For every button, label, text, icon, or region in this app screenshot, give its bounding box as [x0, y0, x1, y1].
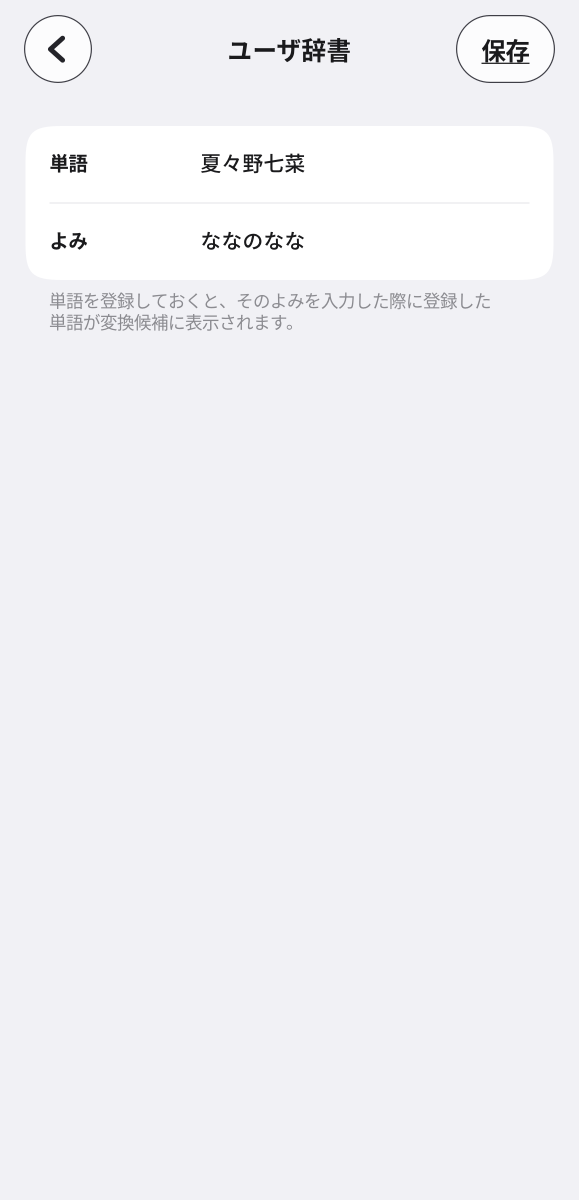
staticText: 単語を登録しておくと、そのよみを入力した際に登録した [49, 287, 491, 312]
staticText: ななのなな [200, 225, 305, 255]
staticText: 保存 [481, 31, 529, 67]
staticText: よみ [49, 226, 87, 254]
staticText: 単語が変換候補に表示されます。 [49, 309, 303, 334]
staticText: 夏々野七菜 [200, 147, 305, 177]
button[interactable]: 保存 [456, 15, 555, 83]
staticText: ユーザ辞書 [227, 31, 351, 67]
staticText: 単語 [49, 148, 87, 176]
button[interactable]: Back [24, 15, 92, 83]
